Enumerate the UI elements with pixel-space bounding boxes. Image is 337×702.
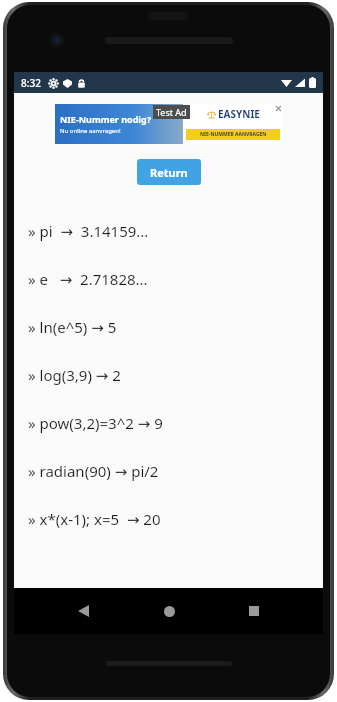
staticText: » radian(90) → pi/2 xyxy=(28,461,159,481)
staticText: 8:32 xyxy=(21,76,41,90)
staticText: » ln(e^5) → 5 xyxy=(28,317,117,337)
staticText: NIE-NUMMER AANVRAGEN xyxy=(200,131,267,138)
staticText: Test Ad xyxy=(156,106,187,118)
button[interactable]: » x*(x-1); x=5 → 20 xyxy=(14,495,323,543)
staticText: » x*(x-1); x=5 → 20 xyxy=(28,509,161,529)
button[interactable]: » pow(3,2)=3^2 → 9 xyxy=(14,399,323,447)
staticText: » pow(3,2)=3^2 → 9 xyxy=(28,413,163,433)
staticText: EASYNIE xyxy=(218,107,260,121)
button[interactable]: » ln(e^5) → 5 xyxy=(14,303,323,351)
button[interactable]: » radian(90) → pi/2 xyxy=(14,447,323,495)
button[interactable]: » log(3,9) → 2 xyxy=(14,351,323,399)
button[interactable]: Close ad xyxy=(274,104,283,113)
staticText: » log(3,9) → 2 xyxy=(28,365,121,385)
staticText: NIE-Nummer nodig? xyxy=(60,113,152,125)
button[interactable]: NIE-Nummer nodig? xyxy=(55,104,283,144)
staticText: Return xyxy=(150,165,188,180)
button[interactable]: Back xyxy=(70,598,96,624)
button[interactable]: » pi → 3.14159... xyxy=(14,207,323,255)
button[interactable]: Home xyxy=(156,598,182,624)
button[interactable]: Recent apps xyxy=(241,598,267,624)
button[interactable]: Return xyxy=(137,159,201,185)
button[interactable]: » e → 2.71828... xyxy=(14,255,323,303)
staticText: » e → 2.71828... xyxy=(28,269,148,289)
staticText: Nu online aanvragen! xyxy=(60,127,121,135)
staticText: » pi → 3.14159... xyxy=(28,221,149,241)
